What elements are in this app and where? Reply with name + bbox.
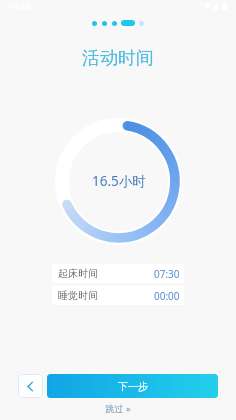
staticText: 16.5小时 xyxy=(92,172,146,190)
button[interactable]: 起床时间 xyxy=(52,264,184,283)
button[interactable]: 睡觉时间 xyxy=(52,286,184,305)
button[interactable]: 下一步 xyxy=(47,374,218,398)
staticText: 下一步 xyxy=(118,380,148,393)
staticText: 睡觉时间 xyxy=(58,289,98,302)
staticText: 00:00 xyxy=(154,289,180,303)
button[interactable]: 跳过 » xyxy=(0,402,236,414)
staticText: 起床时间 xyxy=(58,267,98,280)
button[interactable]: Back xyxy=(18,374,43,398)
staticText: 07:30 xyxy=(154,267,180,281)
staticText: 活动时间 xyxy=(0,47,236,70)
